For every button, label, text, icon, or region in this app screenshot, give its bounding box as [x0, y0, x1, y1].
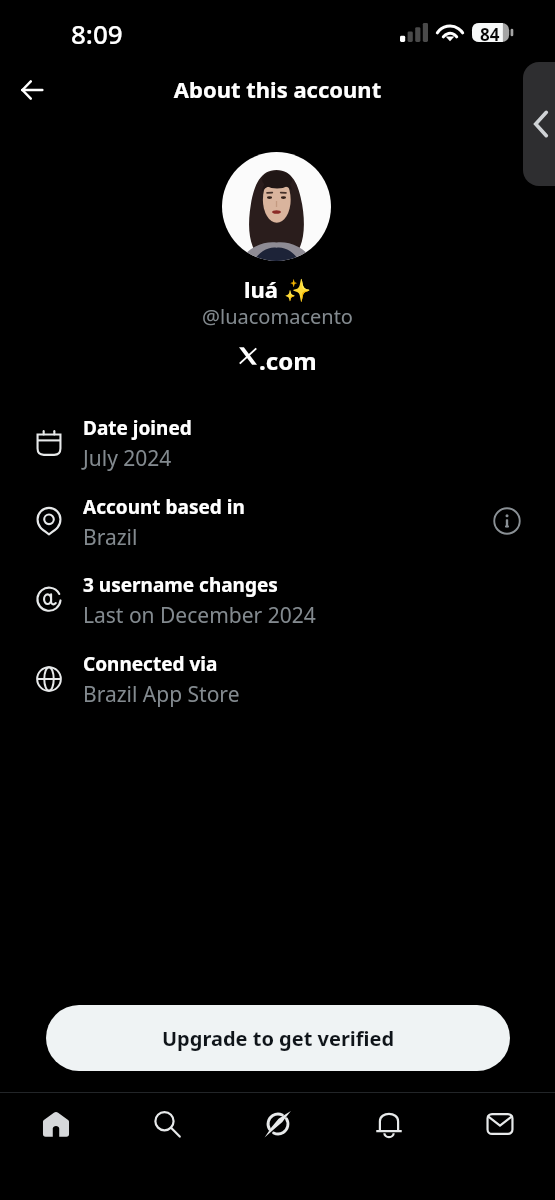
staticText: About this account [0, 74, 555, 104]
staticText: Brazil [83, 523, 138, 552]
button[interactable]: Notifications [333, 1093, 444, 1157]
button[interactable]: Upgrade to get verified [46, 1005, 510, 1071]
button[interactable]: Date joined [0, 403, 555, 482]
staticText: luá ✨ [0, 274, 555, 304]
button[interactable]: Connected via [0, 639, 555, 718]
button[interactable]: Back gesture handle [523, 62, 555, 186]
staticText: .com [259, 344, 317, 377]
staticText: Date joined [83, 415, 192, 441]
staticText: 8:09 [71, 16, 123, 51]
button[interactable]: Grok [222, 1093, 333, 1157]
staticText: Last on December 2024 [83, 601, 316, 630]
staticText: Upgrade to get verified [162, 1025, 395, 1052]
button[interactable]: Account based in [0, 482, 555, 560]
staticText: July 2024 [83, 444, 172, 473]
staticText: Brazil App Store [83, 680, 240, 709]
button[interactable]: Search [111, 1093, 222, 1157]
button[interactable]: Back [9, 67, 55, 113]
button[interactable]: More info [485, 499, 529, 543]
staticText: 84 [480, 23, 500, 42]
button[interactable]: Home [0, 1093, 111, 1157]
staticText: 3 username changes [83, 572, 278, 598]
staticText: @luacomacento [0, 303, 555, 330]
button[interactable]: Messages [444, 1093, 555, 1157]
button[interactable]: 3 username changes [0, 560, 555, 639]
staticText: Account based in [83, 494, 245, 520]
staticText: Connected via [83, 651, 218, 677]
